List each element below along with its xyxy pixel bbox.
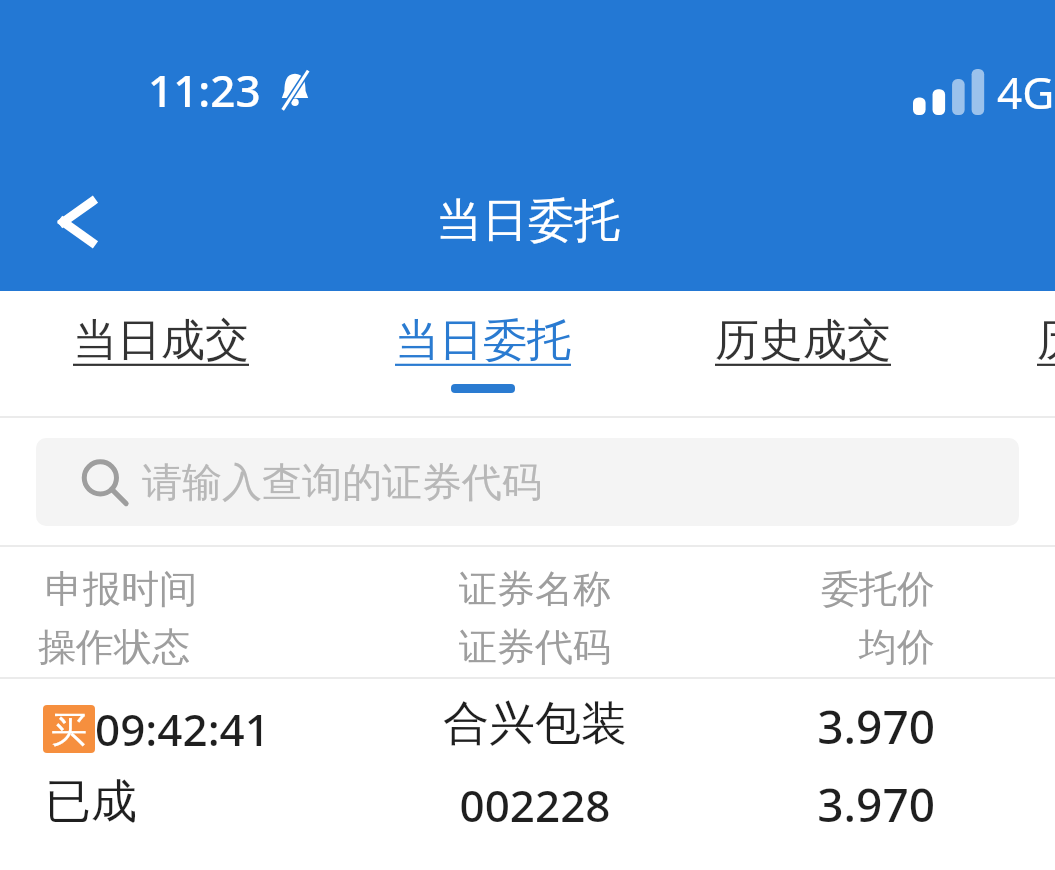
- staticText: 已成: [45, 773, 137, 831]
- staticText: 证券代码: [360, 623, 710, 671]
- staticText: 当日成交: [73, 313, 249, 368]
- button[interactable]: 历史委托: [1027, 291, 1055, 416]
- staticText: 买: [51, 707, 87, 752]
- button[interactable]: Back: [32, 176, 124, 268]
- button[interactable]: 请输入查询的证券代码: [36, 438, 1019, 526]
- staticText: 4G: [997, 62, 1055, 122]
- button[interactable]: 买: [0, 679, 1055, 857]
- staticText: 均价: [635, 623, 935, 671]
- button[interactable]: 当日委托: [385, 291, 581, 416]
- staticText: 09:42:41: [95, 699, 270, 759]
- staticText: 证券名称: [360, 565, 710, 613]
- button[interactable]: 历史成交: [705, 291, 901, 416]
- staticText: 请输入查询的证券代码: [142, 457, 542, 507]
- staticText: 11:23: [148, 60, 261, 120]
- staticText: 当日委托: [436, 192, 620, 250]
- staticText: 当日委托: [395, 313, 571, 368]
- staticText: 历史委托: [1037, 313, 1055, 368]
- staticText: 3.970: [635, 695, 935, 758]
- staticText: 历史成交: [715, 313, 891, 368]
- staticText: 002228: [360, 775, 710, 835]
- staticText: 操作状态: [38, 623, 190, 671]
- staticText: 3.970: [635, 773, 935, 836]
- staticText: 申报时间: [45, 565, 197, 613]
- staticText: 合兴包装: [360, 695, 710, 753]
- staticText: 委托价: [635, 565, 935, 613]
- button[interactable]: 当日成交: [63, 291, 259, 416]
